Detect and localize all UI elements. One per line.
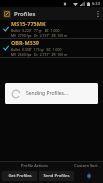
button[interactable]: Send Profiles <box>39 171 74 181</box>
staticText: Profile Actions <box>21 163 48 168</box>
staticText: MV 2630 fps Dr 2.737" ZR 100 m <box>11 52 68 57</box>
button[interactable]: Get Profiles <box>2 171 37 181</box>
staticText: 6:33 <box>92 1 100 6</box>
staticText: MV 2790 fps Dr 2.737" ZR 100 m <box>11 33 68 38</box>
staticText: OBR-M339 <box>11 39 40 46</box>
button[interactable]: More options <box>93 7 103 20</box>
staticText: Get Profiles <box>8 173 32 179</box>
button[interactable]: OBR-M339 <box>0 39 103 57</box>
staticText: Custom Sort <box>74 163 98 168</box>
staticText: MS15-775MK <box>11 20 46 27</box>
staticText: Bullet 0.224" 77 gr BC 1.000 <box>11 28 60 33</box>
button[interactable]: MS15-775MK <box>0 20 103 38</box>
button[interactable]: Custom Sort <box>76 171 101 181</box>
staticText: Send Profiles <box>43 173 70 179</box>
staticText: Bullet 0.308" 175 gr BC 1.000 <box>11 47 62 52</box>
staticText: Profiles <box>14 10 36 18</box>
staticText: Sending Profiles... <box>26 90 69 97</box>
